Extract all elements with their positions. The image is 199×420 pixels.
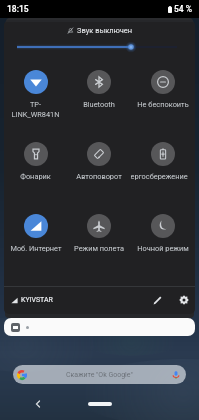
staticText: 18:15 xyxy=(7,4,29,14)
button[interactable]: Режим полета xyxy=(67,214,131,266)
button[interactable]: Back xyxy=(30,396,46,412)
staticText: Скажите "Ok Google" xyxy=(66,371,133,379)
staticText: Ночной режим xyxy=(137,244,189,253)
button[interactable]: Не беспокоить xyxy=(131,70,195,122)
staticText: Фонарик xyxy=(20,172,51,181)
button[interactable]: Скажите "Ok Google" xyxy=(13,365,186,384)
button[interactable]: Энергосбережение xyxy=(131,142,195,194)
staticText: Bluetooth xyxy=(83,100,115,109)
button[interactable]: Home xyxy=(85,397,115,411)
staticText: Моб. Интернет xyxy=(10,244,62,253)
staticText: KYIVSTAR xyxy=(21,296,53,304)
staticText: Энергосбережение xyxy=(131,172,188,181)
button[interactable]: Фонарик xyxy=(4,142,67,194)
staticText: Режим полета xyxy=(74,244,124,253)
staticText: Не беспокоить xyxy=(137,100,189,109)
button[interactable]: TP- LINK_WR841N xyxy=(4,70,67,122)
staticText: Звук выключен xyxy=(77,26,133,35)
staticText: TP- LINK_WR841N xyxy=(11,100,60,118)
staticText: Автоповорот xyxy=(76,172,122,181)
staticText: 54 % xyxy=(174,4,193,14)
button[interactable]: Bluetooth xyxy=(67,70,131,122)
button[interactable]: Автоповорот xyxy=(67,142,131,194)
button[interactable]: Settings xyxy=(174,290,194,310)
button[interactable] xyxy=(4,318,195,336)
button[interactable]: Моб. Интернет xyxy=(4,214,67,266)
button[interactable]: Ночной режим xyxy=(131,214,195,266)
button[interactable]: Edit tiles xyxy=(147,290,167,310)
